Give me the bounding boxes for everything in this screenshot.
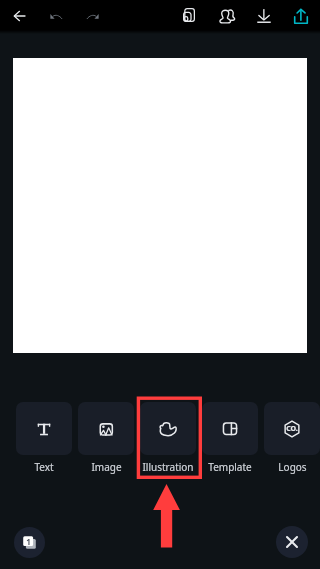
staticText: Image: [91, 460, 122, 474]
button[interactable]: Close: [276, 526, 308, 558]
button[interactable]: Illustration: [140, 402, 196, 474]
button[interactable]: Collaborate: [213, 2, 241, 30]
button[interactable]: Back: [5, 2, 33, 30]
button[interactable]: Share: [287, 2, 315, 30]
staticText: Illustration: [142, 460, 194, 474]
button[interactable]: Text: [16, 402, 72, 474]
button[interactable]: Resize: [175, 1, 203, 29]
button[interactable]: Image: [78, 402, 134, 474]
button[interactable]: Download: [250, 2, 278, 30]
staticText: CO.: [286, 424, 298, 434]
button[interactable]: Redo: [79, 2, 107, 30]
button[interactable]: CO.: [264, 402, 320, 474]
button[interactable]: Template: [202, 402, 258, 474]
staticText: Logos: [278, 460, 307, 474]
staticText: Template: [208, 460, 252, 474]
button[interactable]: Undo: [42, 2, 70, 30]
button[interactable]: Pages: [14, 527, 45, 558]
staticText: Text: [34, 460, 54, 474]
staticText: 1: [23, 536, 34, 547]
